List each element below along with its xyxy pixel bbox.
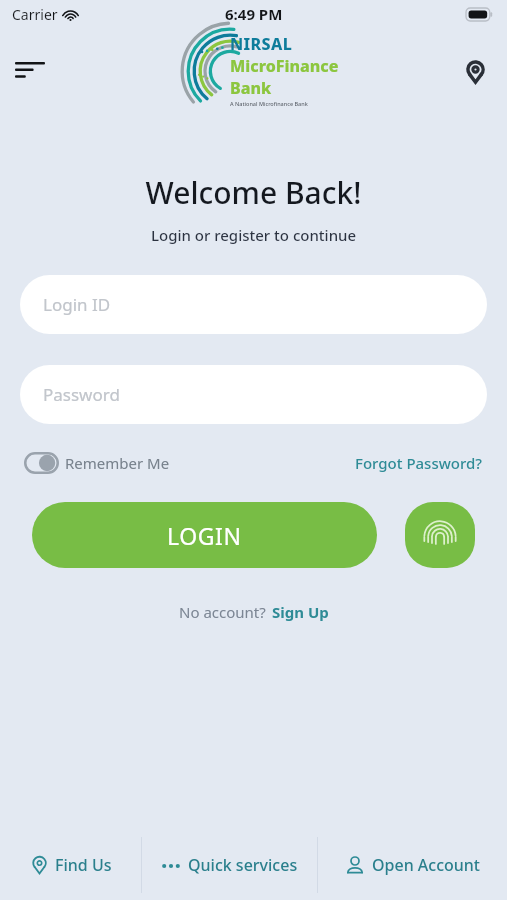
button[interactable]: Login ID bbox=[20, 275, 487, 334]
button[interactable]: Remember Me bbox=[24, 452, 170, 474]
staticText: 6:49 PM bbox=[225, 4, 283, 24]
staticText: Sign Up bbox=[272, 602, 329, 622]
button[interactable]: Menu bbox=[8, 50, 52, 94]
staticText: Login or register to continue bbox=[0, 225, 507, 245]
button[interactable]: LOGIN bbox=[32, 502, 377, 568]
button[interactable]: Quick services bbox=[142, 830, 317, 900]
button[interactable]: Forgot Password? bbox=[355, 453, 483, 473]
button[interactable]: Find Us bbox=[0, 830, 141, 900]
button[interactable]: Find branch location bbox=[453, 50, 497, 94]
staticText: Bank bbox=[230, 77, 272, 99]
button[interactable]: Password bbox=[20, 365, 487, 424]
staticText: No account? bbox=[179, 602, 266, 622]
staticText: MicroFinance bbox=[230, 55, 339, 77]
staticText: Quick services bbox=[188, 854, 298, 876]
button[interactable]: Login with fingerprint bbox=[405, 502, 475, 568]
staticText: Forgot Password? bbox=[355, 453, 483, 473]
staticText: Open Account bbox=[372, 854, 481, 876]
staticText: Carrier bbox=[12, 5, 58, 24]
staticText: Find Us bbox=[55, 854, 112, 876]
button[interactable]: Open Account bbox=[318, 830, 507, 900]
button[interactable]: Sign Up bbox=[272, 602, 329, 622]
staticText: A National Microfinance Bank bbox=[230, 100, 308, 107]
staticText: NIRSAL bbox=[230, 33, 293, 55]
staticText: Password bbox=[43, 383, 120, 406]
staticText: Login ID bbox=[43, 293, 111, 316]
staticText: Remember Me bbox=[65, 453, 170, 473]
staticText: LOGIN bbox=[167, 520, 242, 551]
staticText: Welcome Back! bbox=[0, 172, 507, 213]
